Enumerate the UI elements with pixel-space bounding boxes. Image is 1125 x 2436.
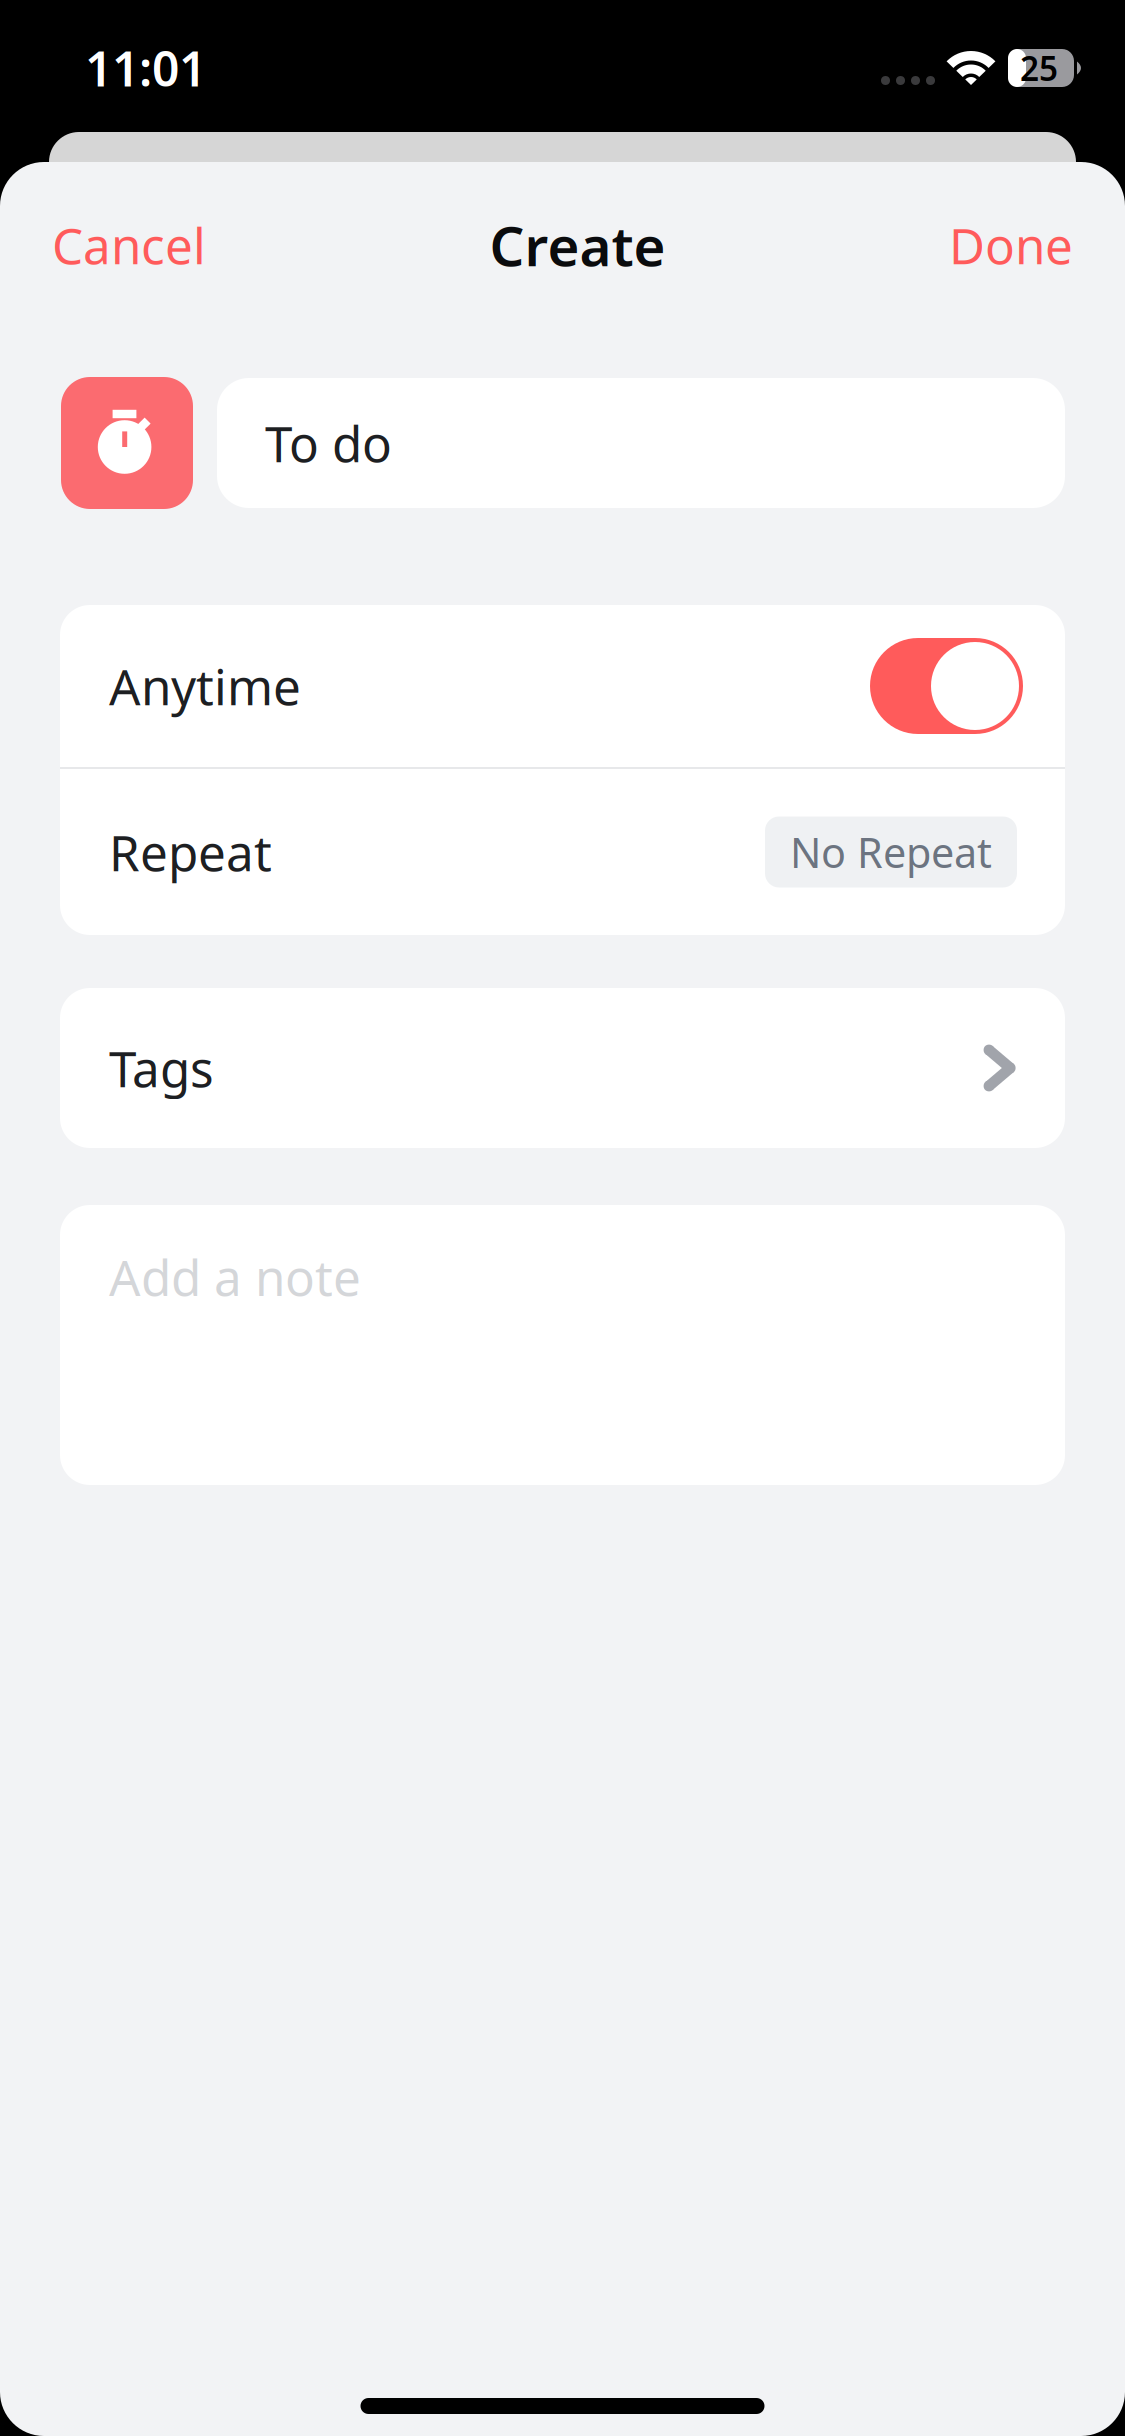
staticText: Cancel (52, 212, 206, 278)
staticText: Tags (109, 1035, 214, 1101)
button[interactable]: Done (925, 162, 1125, 328)
staticText: Repeat (109, 819, 272, 885)
staticText: Create (489, 209, 665, 281)
button[interactable]: Anytime (60, 605, 1065, 767)
staticText: To do (265, 410, 392, 476)
button[interactable]: Repeat (60, 769, 1065, 935)
button[interactable]: To do (217, 378, 1065, 508)
staticText: Add a note (109, 1244, 361, 1309)
staticText: 11:01 (85, 36, 206, 100)
staticText: Done (949, 212, 1073, 278)
staticText: Anytime (109, 653, 301, 719)
button[interactable]: Add a note (60, 1205, 1065, 1485)
button[interactable]: Cancel (0, 162, 230, 328)
button[interactable]: Choose icon (61, 377, 193, 509)
staticText: 25 (1020, 46, 1058, 90)
button[interactable]: Tags (60, 988, 1065, 1148)
staticText: No Repeat (790, 825, 992, 879)
